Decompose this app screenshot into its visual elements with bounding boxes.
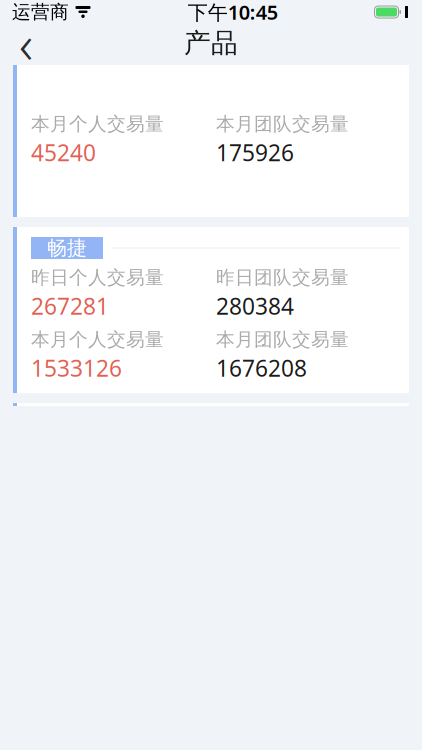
staticText: 45240 [31, 137, 96, 167]
staticText: 下午10:45 [188, 0, 278, 25]
staticText: 昨日团队交易量 [216, 266, 349, 289]
staticText: 产品 [184, 27, 238, 59]
staticText: ‹ [19, 8, 33, 78]
staticText: 昨日个人交易量 [31, 266, 164, 289]
staticText: 267281 [31, 291, 109, 321]
staticText: 1676208 [216, 353, 307, 383]
staticText: 运营商 [12, 0, 69, 23]
staticText: 175926 [216, 137, 294, 167]
staticText: 280384 [216, 291, 294, 321]
staticText: 本月个人交易量 [31, 112, 164, 135]
staticText: 本月个人交易量 [31, 328, 164, 351]
button[interactable]: 本月个人交易量 [13, 65, 409, 217]
staticText: 本月团队交易量 [216, 328, 349, 351]
staticText: 本月团队交易量 [216, 112, 349, 135]
button[interactable]: 返回 [4, 24, 48, 62]
button[interactable]: 畅捷 [13, 227, 409, 393]
staticText: 畅捷 [47, 236, 87, 260]
staticText: 1533126 [31, 353, 122, 383]
